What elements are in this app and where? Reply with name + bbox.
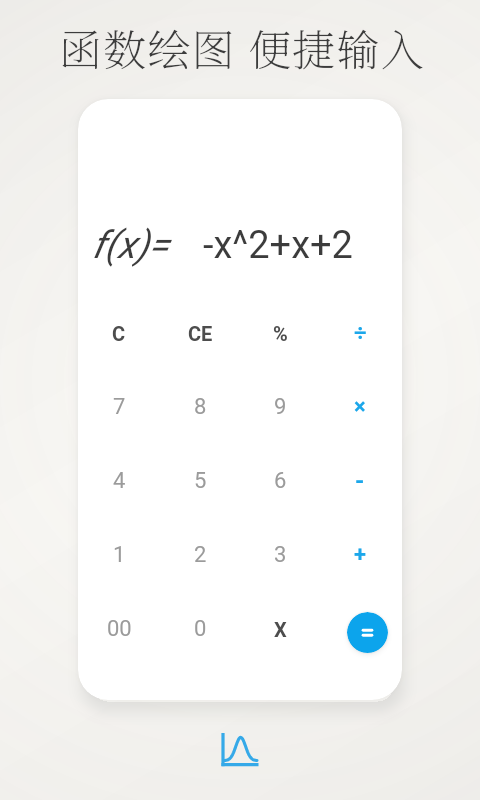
staticText: -x^2+x+2 xyxy=(203,223,353,268)
staticText: X xyxy=(274,618,287,641)
button[interactable]: + xyxy=(320,519,400,591)
staticText: 7 xyxy=(113,394,126,420)
staticText: 5 xyxy=(194,468,207,494)
staticText: 1 xyxy=(113,542,126,568)
staticText: CE xyxy=(188,322,213,345)
button[interactable]: X xyxy=(240,593,320,665)
staticText: - xyxy=(355,467,365,495)
staticText: % xyxy=(273,322,288,345)
button[interactable]: % xyxy=(240,297,320,369)
staticText: 6 xyxy=(274,468,287,494)
button[interactable]: ÷ xyxy=(320,297,400,369)
staticText: 3 xyxy=(274,542,287,568)
staticText: 00 xyxy=(107,616,132,642)
staticText: f(x)= xyxy=(92,223,169,268)
button[interactable]: 4 xyxy=(79,445,159,517)
staticText: 2 xyxy=(194,542,207,568)
staticText: × xyxy=(354,394,366,420)
button[interactable]: C xyxy=(79,297,159,369)
button[interactable]: 0 xyxy=(160,593,240,665)
button[interactable]: 6 xyxy=(240,445,320,517)
button[interactable]: 7 xyxy=(79,371,159,443)
button[interactable]: 2 xyxy=(160,519,240,591)
button[interactable]: 00 xyxy=(79,593,159,665)
button[interactable] xyxy=(347,612,388,653)
button[interactable]: - xyxy=(320,445,400,517)
staticText: ÷ xyxy=(354,320,367,346)
button[interactable]: 3 xyxy=(240,519,320,591)
staticText: 0 xyxy=(194,616,207,642)
staticText: 函数绘图 便捷输入 xyxy=(59,17,425,73)
staticText: 9 xyxy=(274,394,287,420)
button[interactable] xyxy=(200,720,270,780)
button[interactable]: 5 xyxy=(160,445,240,517)
button[interactable]: × xyxy=(320,371,400,443)
button[interactable]: CE xyxy=(160,297,240,369)
button[interactable]: 8 xyxy=(160,371,240,443)
staticText: + xyxy=(354,542,367,568)
staticText: C xyxy=(112,322,126,345)
button[interactable]: 9 xyxy=(240,371,320,443)
button[interactable]: 1 xyxy=(79,519,159,591)
staticText: 8 xyxy=(194,394,207,420)
staticText: 4 xyxy=(113,468,126,494)
